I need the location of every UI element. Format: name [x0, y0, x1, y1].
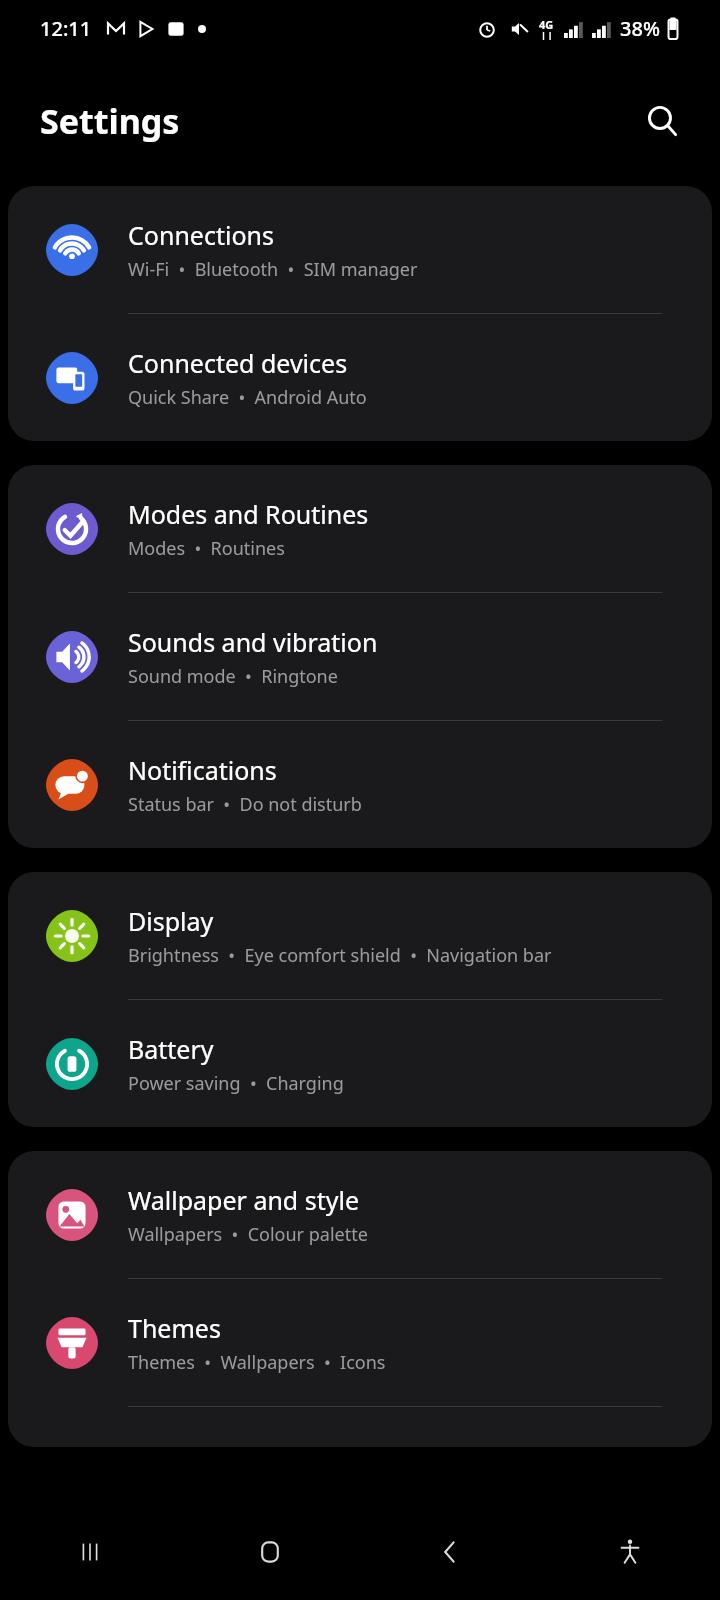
staticText: Notifications	[128, 753, 277, 787]
button[interactable]: Display	[8, 872, 712, 1000]
button[interactable]: Wallpaper and style	[8, 1151, 712, 1279]
staticText: Settings	[40, 98, 180, 144]
staticText: Display	[128, 904, 214, 938]
button[interactable]: Connections	[8, 186, 712, 314]
button[interactable]: Recents	[0, 1504, 180, 1600]
staticText: Brightness • Eye comfort shield • Naviga…	[128, 943, 552, 968]
staticText: Wi-Fi • Bluetooth • SIM manager	[128, 257, 418, 282]
staticText: Sound mode • Ringtone	[128, 664, 338, 689]
staticText: Themes • Wallpapers • Icons	[128, 1350, 386, 1375]
staticText: Connections	[128, 218, 274, 252]
staticText: Power saving • Charging	[128, 1071, 344, 1096]
button[interactable]: Notifications	[8, 721, 712, 848]
staticText: Wallpaper and style	[128, 1183, 360, 1217]
staticText: Themes	[128, 1311, 221, 1345]
staticText: Battery	[128, 1032, 214, 1066]
staticText: 4G	[539, 17, 554, 32]
staticText: Modes and Routines	[128, 497, 369, 531]
button[interactable]: Back	[360, 1504, 540, 1600]
staticText: 38%	[620, 15, 660, 42]
staticText: 12:11	[40, 15, 92, 42]
button[interactable]: Connected devices	[8, 314, 712, 441]
button[interactable]: Sounds and vibration	[8, 593, 712, 721]
staticText: Status bar • Do not disturb	[128, 792, 362, 817]
button[interactable]: Modes and Routines	[8, 465, 712, 593]
staticText: Quick Share • Android Auto	[128, 385, 367, 410]
staticText: Wallpapers • Colour palette	[128, 1222, 368, 1247]
button[interactable]: Themes	[8, 1279, 712, 1407]
staticText: Sounds and vibration	[128, 625, 378, 659]
staticText: Connected devices	[128, 346, 348, 380]
button[interactable]: Search	[634, 93, 690, 149]
button[interactable]: Home	[180, 1504, 360, 1600]
button[interactable]: Battery	[8, 1000, 712, 1127]
button[interactable]: Accessibility	[540, 1504, 720, 1600]
staticText: Modes • Routines	[128, 536, 285, 561]
